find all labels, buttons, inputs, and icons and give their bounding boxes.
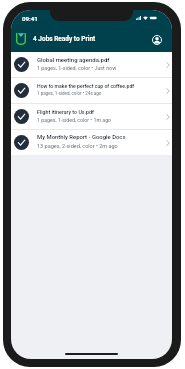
staticText: 1 pages, 1-sided, color • 24s ago bbox=[37, 91, 102, 96]
staticText: 4 Jobs Ready to Print bbox=[33, 35, 96, 43]
staticText: 09:41 bbox=[22, 15, 38, 22]
staticText: 1 pages, 1-sided, color • Just now bbox=[37, 65, 117, 71]
button[interactable]: Flight itinerary to Us.pdf bbox=[11, 104, 172, 129]
staticText: Flight itinerary to Us.pdf bbox=[37, 109, 94, 115]
staticText: 13 pages, 2-sided, color • 2m ago bbox=[37, 143, 118, 149]
staticText: My Monthly Report - Google Docs bbox=[37, 134, 126, 141]
staticText: 1 pages, 1-sided, color • 1m ago bbox=[37, 117, 112, 123]
staticText: Global meeting agenda.pdf bbox=[37, 56, 110, 63]
button[interactable]: Account bbox=[150, 33, 163, 46]
button[interactable]: My Monthly Report - Google Docs bbox=[11, 130, 172, 155]
button[interactable]: How to make the perfect cup of coffee.pd… bbox=[11, 78, 172, 103]
button[interactable]: Global meeting agenda.pdf bbox=[11, 52, 172, 77]
staticText: How to make the perfect cup of coffee.pd… bbox=[37, 83, 135, 89]
